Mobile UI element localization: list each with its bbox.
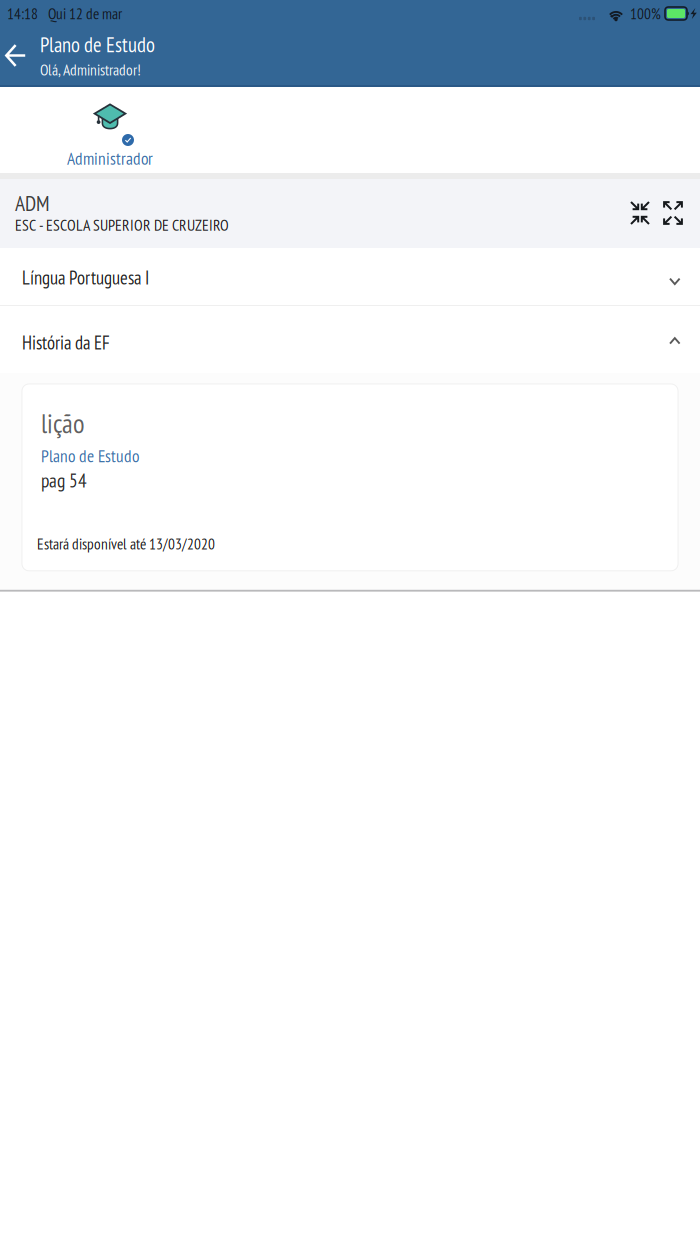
button[interactable]: História da EF xyxy=(0,306,700,373)
staticText: Língua Portuguesa I xyxy=(22,265,149,290)
staticText: Olá, Administrador! xyxy=(40,60,141,80)
staticText: lição xyxy=(41,406,85,440)
staticText: ADM xyxy=(15,189,50,217)
staticText: ESC - ESCOLA SUPERIOR DE CRUZEIRO xyxy=(15,215,229,235)
staticText: Administrador xyxy=(67,147,153,169)
staticText: Plano de Estudo xyxy=(41,444,139,467)
staticText: pag 54 xyxy=(41,468,87,493)
staticText: 100% xyxy=(630,4,661,23)
button[interactable]: Expand all xyxy=(654,191,692,235)
staticText: História da EF xyxy=(22,330,110,355)
staticText: Qui 12 de mar xyxy=(48,4,122,23)
button[interactable]: Back xyxy=(0,26,31,84)
button[interactable]: Collapse all xyxy=(626,191,654,235)
button[interactable]: Língua Portuguesa I xyxy=(0,248,700,305)
staticText: Plano de Estudo xyxy=(40,31,155,58)
staticText: 14:18 xyxy=(7,4,38,23)
staticText: Estará disponível até 13/03/2020 xyxy=(37,534,215,554)
